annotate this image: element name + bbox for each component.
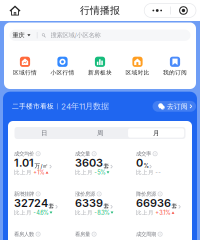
staticText: -5%	[94, 169, 105, 176]
staticText: 24年11月数据	[61, 101, 109, 111]
staticText: %	[143, 162, 148, 169]
staticText: 区域对比	[125, 69, 149, 76]
button[interactable]: 新房板块	[82, 56, 118, 77]
staticText: 涨价房源	[75, 191, 95, 197]
staticText: -8.3%	[94, 209, 109, 216]
button[interactable]: 重庆	[9, 29, 37, 41]
button[interactable]: 日	[16, 128, 72, 138]
staticText: 重庆	[12, 31, 24, 39]
staticText: 66936	[136, 196, 171, 209]
staticText: 套	[103, 202, 109, 210]
staticText: +3.1%	[155, 209, 170, 216]
staticText: 比上月	[75, 169, 93, 176]
staticText: 比上月	[136, 209, 154, 216]
staticText: 比上月	[14, 209, 32, 216]
staticText: -4.6%	[33, 209, 48, 216]
staticText: --	[155, 169, 161, 176]
staticText: 32724	[14, 196, 48, 209]
staticText: 比上月	[75, 209, 93, 216]
button[interactable]: 成交均价	[14, 150, 64, 179]
staticText: 3603	[75, 156, 103, 169]
button[interactable]: 区域行情	[7, 56, 43, 77]
staticText: 1.01	[14, 156, 34, 169]
button[interactable]: More	[144, 3, 170, 17]
staticText: 6339	[75, 196, 103, 209]
staticText: 日	[41, 129, 47, 137]
staticText: 新房板块	[88, 69, 112, 76]
staticText: 看房量	[75, 231, 90, 237]
button[interactable]: 看房人数	[14, 230, 64, 240]
button[interactable]: Close	[171, 3, 196, 17]
staticText: 降价房源	[136, 191, 156, 197]
staticText: 比上月	[136, 169, 154, 176]
staticText: 万/㎡	[34, 162, 48, 169]
button[interactable]: 月	[128, 128, 184, 138]
button[interactable]: 区域对比	[119, 56, 155, 77]
staticText: 套	[48, 202, 54, 210]
button[interactable]: 成交量	[75, 150, 125, 179]
button[interactable]: 成交周期	[136, 230, 186, 240]
button[interactable]: 涨价房源	[75, 190, 125, 219]
staticText: 月	[153, 129, 159, 137]
staticText: 周	[97, 129, 103, 137]
staticText: 套	[103, 162, 109, 169]
staticText: 我的订阅	[163, 69, 187, 76]
staticText: 套	[171, 202, 177, 210]
button[interactable]: Home	[5, 0, 25, 20]
staticText: 0	[136, 156, 143, 169]
staticText: 小区行情	[50, 69, 74, 76]
button[interactable]: 小区行情	[44, 56, 80, 77]
button[interactable]: 成交率	[136, 150, 186, 179]
staticText: 行情播报	[80, 4, 120, 17]
button[interactable]: 我的订阅	[157, 56, 193, 77]
button[interactable]: 看房量	[75, 230, 125, 240]
staticText: 去订阅	[167, 102, 188, 111]
staticText: 成交量	[75, 150, 90, 157]
button[interactable]: 降价房源	[136, 190, 186, 219]
staticText: +1%	[33, 169, 44, 176]
button[interactable]: 新增挂牌	[14, 190, 64, 219]
staticText: 比上月	[14, 169, 32, 176]
button[interactable]: 搜索区域/小区名称	[37, 29, 190, 41]
staticText: 新增挂牌	[14, 191, 34, 197]
staticText: 搜索区域/小区名称	[51, 31, 101, 39]
staticText: 成交周期	[136, 231, 156, 237]
staticText: 成交均价	[14, 150, 34, 157]
staticText: 成交率	[136, 150, 151, 157]
button[interactable]: 去订阅	[153, 101, 196, 112]
button[interactable]: 周	[72, 128, 128, 138]
staticText: 看房人数	[14, 231, 34, 237]
staticText: 二手楼市看板	[12, 102, 54, 111]
staticText: 区域行情	[13, 69, 37, 76]
